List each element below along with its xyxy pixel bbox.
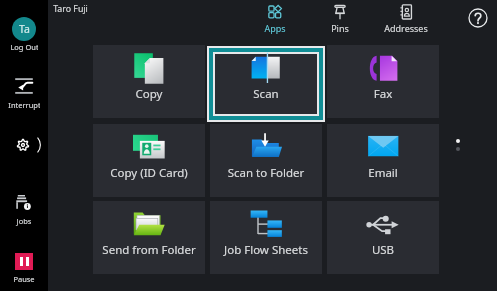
button[interactable]: Email <box>327 124 439 197</box>
button[interactable]: Page indicator <box>450 134 466 156</box>
button[interactable]: Help <box>468 8 488 28</box>
button[interactable]: USB <box>327 201 439 274</box>
staticText: USB <box>327 242 439 258</box>
staticText: Taro Fuji <box>53 3 88 15</box>
staticText: Job Flow Sheets <box>210 242 322 258</box>
button[interactable]: Scan to Folder <box>210 124 322 197</box>
staticText: Scan to Folder <box>210 165 322 181</box>
staticText: Copy (ID Card) <box>93 165 205 181</box>
button[interactable]: Jobs <box>8 192 40 226</box>
staticText: Send from Folder <box>93 242 205 258</box>
button[interactable]: Addresses <box>381 4 431 34</box>
staticText: Email <box>327 165 439 181</box>
staticText: Copy <box>93 86 205 102</box>
staticText: Interrupt <box>8 100 40 110</box>
staticText: Log Out <box>10 42 38 52</box>
staticText: Scan <box>210 86 322 102</box>
staticText: Ta <box>19 22 30 36</box>
staticText: Pause <box>8 274 40 284</box>
button[interactable]: Scan <box>210 45 322 118</box>
button[interactable]: Settings <box>16 137 42 153</box>
button[interactable] <box>215 54 317 114</box>
staticText: Addresses <box>381 22 431 34</box>
button[interactable]: Pins <box>315 4 365 34</box>
button[interactable]: Ta <box>10 17 38 52</box>
staticText: Fax <box>327 86 439 102</box>
button[interactable]: Copy <box>93 45 205 118</box>
button[interactable]: Interrupt <box>8 78 40 110</box>
button[interactable]: Send from Folder <box>93 201 205 274</box>
button[interactable]: Pause <box>8 253 40 284</box>
button[interactable]: Copy (ID Card) <box>93 124 205 197</box>
button[interactable]: Fax <box>327 45 439 118</box>
staticText: Apps <box>262 22 288 34</box>
button[interactable]: Apps <box>262 4 288 34</box>
button[interactable]: Job Flow Sheets <box>210 201 322 274</box>
staticText: Pins <box>315 22 365 34</box>
staticText: Jobs <box>8 216 40 226</box>
